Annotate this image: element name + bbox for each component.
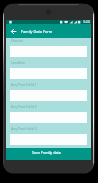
button[interactable]: Landline bbox=[10, 62, 87, 84]
staticText: Any Post Held 3 bbox=[11, 126, 37, 131]
button[interactable]: Back bbox=[6, 25, 21, 38]
staticText: Landline bbox=[11, 60, 26, 65]
button[interactable]: Any Post Held 3 bbox=[10, 128, 87, 148]
staticText: Family Data Form bbox=[21, 29, 53, 34]
button[interactable]: Save Family data bbox=[6, 148, 91, 160]
staticText: 3:24 bbox=[83, 19, 90, 23]
staticText: Any Post Held 2 bbox=[11, 104, 37, 109]
staticText: District bbox=[11, 38, 23, 43]
staticText: Any Post Held 1 bbox=[11, 82, 37, 87]
button[interactable]: District bbox=[10, 40, 87, 62]
staticText: Save Family data bbox=[32, 150, 61, 155]
button[interactable]: Any Post Held 2 bbox=[10, 106, 87, 128]
button[interactable]: Any Post Held 1 bbox=[10, 84, 87, 106]
